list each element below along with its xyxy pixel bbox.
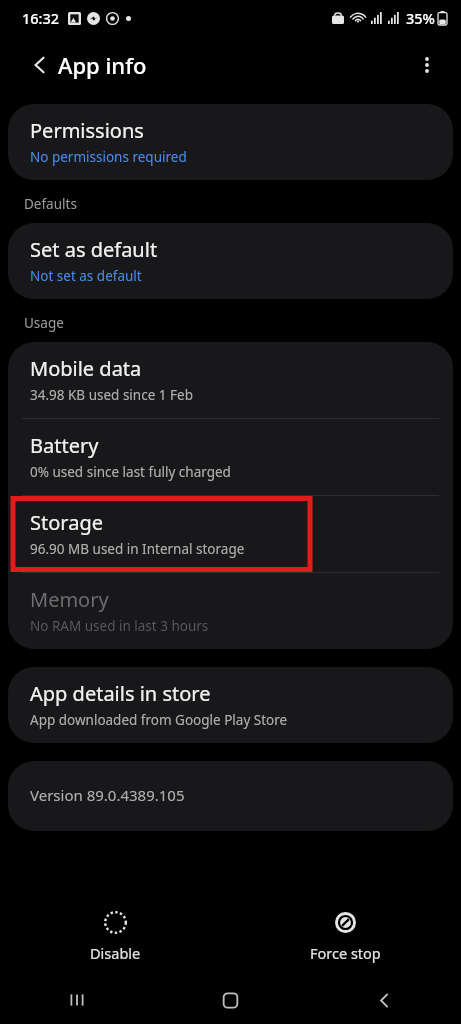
staticText: Battery [30,432,99,459]
staticText: Memory [30,586,109,613]
staticText: Permissions [30,117,144,144]
staticText: App downloaded from Google Play Store [30,711,288,729]
button[interactable]: App details in store [8,667,453,743]
button[interactable]: Memory [8,573,453,649]
button[interactable]: Home [153,976,307,1024]
staticText: Version 89.0.4389.105 [30,785,185,805]
staticText: No permissions required [30,148,187,166]
button[interactable]: Storage [8,496,453,572]
button[interactable]: Disable [0,898,230,976]
staticText: Disable [90,943,141,963]
button[interactable]: Back [307,976,461,1024]
staticText: 35% [406,8,435,28]
staticText: Defaults [24,195,77,213]
staticText: 34.98 KB used since 1 Feb [30,386,193,404]
staticText: Force stop [310,943,381,963]
staticText: Storage [30,509,103,536]
staticText: Set as default [30,236,158,263]
staticText: 96.90 MB used in Internal storage [30,540,245,558]
button[interactable]: Permissions [8,104,453,180]
staticText: Usage [24,314,64,332]
button[interactable]: Version 89.0.4389.105 [8,761,453,831]
button[interactable]: Recent apps [0,976,153,1024]
button[interactable]: More options [405,43,449,87]
staticText: Not set as default [30,267,142,285]
staticText: App details in store [30,680,211,707]
button[interactable]: Force stop [230,898,461,976]
button[interactable]: Battery [8,419,453,495]
staticText: 16:32 [22,8,60,28]
staticText: 0% used since last fully charged [30,463,231,481]
button[interactable]: Mobile data [8,342,453,418]
button[interactable]: Set as default [8,223,453,299]
staticText: App info [58,50,147,80]
button[interactable]: Back [18,43,62,87]
staticText: Mobile data [30,355,142,382]
staticText: No RAM used in last 3 hours [30,617,209,635]
